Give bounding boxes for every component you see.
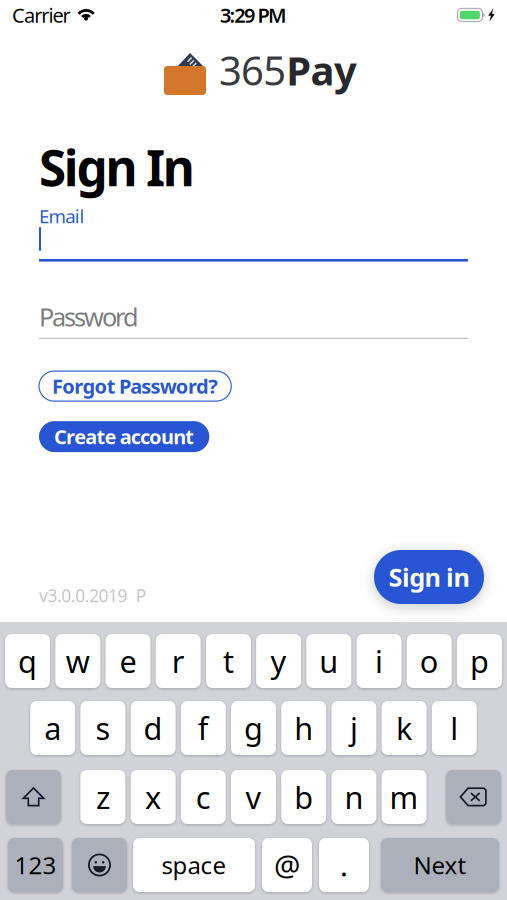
- staticText: r: [172, 641, 185, 681]
- staticText: l: [450, 708, 458, 748]
- staticText: d: [144, 708, 163, 748]
- staticText: Create account: [54, 423, 194, 450]
- button[interactable]: n: [331, 770, 376, 824]
- staticText: i: [375, 641, 383, 681]
- staticText: Carrier: [12, 2, 71, 28]
- button[interactable]: g: [231, 701, 276, 755]
- button[interactable]: j: [331, 701, 376, 755]
- button[interactable]: .: [319, 838, 369, 892]
- button[interactable]: r: [156, 634, 201, 688]
- staticText: m: [390, 777, 419, 817]
- button[interactable]: y: [256, 634, 301, 688]
- staticText: space: [161, 849, 226, 881]
- button[interactable]: s: [80, 701, 125, 755]
- button[interactable]: @: [262, 838, 312, 892]
- button[interactable]: 123: [8, 838, 63, 892]
- button[interactable]: x: [131, 770, 176, 824]
- button[interactable]: space: [133, 838, 255, 892]
- staticText: g: [244, 708, 263, 748]
- button[interactable]: v: [231, 770, 276, 824]
- staticText: @: [274, 845, 300, 884]
- staticText: u: [319, 641, 338, 681]
- button[interactable]: Next: [381, 838, 499, 892]
- staticText: f: [198, 708, 209, 748]
- button[interactable]: w: [55, 634, 100, 688]
- staticText: 123: [14, 849, 56, 881]
- staticText: Next: [413, 849, 466, 881]
- staticText: c: [196, 777, 211, 817]
- staticText: Forgot Password?: [52, 373, 218, 399]
- staticText: k: [396, 708, 412, 748]
- staticText: o: [420, 641, 439, 681]
- button[interactable]: Delete: [446, 770, 501, 824]
- button[interactable]: o: [407, 634, 452, 688]
- button[interactable]: d: [131, 701, 176, 755]
- button[interactable]: e: [105, 634, 150, 688]
- button[interactable]: a: [30, 701, 75, 755]
- staticText: Sign in: [389, 560, 469, 594]
- staticText: h: [294, 708, 313, 748]
- button[interactable]: Sign in: [374, 550, 484, 604]
- staticText: n: [344, 777, 363, 817]
- staticText: z: [96, 777, 110, 817]
- staticText: p: [470, 641, 489, 681]
- staticText: a: [44, 708, 61, 748]
- staticText: .: [340, 845, 348, 884]
- staticText: 3:29 PM: [220, 2, 287, 28]
- staticText: v: [245, 777, 261, 817]
- staticText: q: [18, 641, 37, 681]
- staticText: Sign In: [39, 134, 195, 200]
- staticText: Password: [39, 300, 139, 333]
- staticText: j: [350, 708, 358, 748]
- button[interactable]: b: [281, 770, 326, 824]
- button[interactable]: u: [306, 634, 351, 688]
- button[interactable]: k: [382, 701, 427, 755]
- button[interactable]: f: [181, 701, 226, 755]
- staticText: b: [294, 777, 313, 817]
- button[interactable]: Shift: [6, 770, 61, 824]
- button[interactable]: q: [5, 634, 50, 688]
- button[interactable]: c: [181, 770, 226, 824]
- button[interactable]: l: [432, 701, 477, 755]
- staticText: w: [66, 641, 90, 681]
- staticText: x: [145, 777, 161, 817]
- staticText: Pay: [286, 43, 357, 96]
- staticText: s: [95, 708, 110, 748]
- button[interactable]: p: [457, 634, 502, 688]
- button[interactable]: m: [382, 770, 427, 824]
- button[interactable]: t: [206, 634, 251, 688]
- button[interactable]: h: [281, 701, 326, 755]
- button[interactable]: Create account: [39, 421, 209, 452]
- staticText: e: [119, 641, 136, 681]
- button[interactable]: Emoji: [72, 838, 127, 892]
- staticText: y: [271, 641, 287, 681]
- staticText: v3.0.0.2019 P: [39, 584, 146, 607]
- staticText: Email: [39, 204, 84, 228]
- button[interactable]: i: [356, 634, 401, 688]
- button[interactable]: Forgot Password?: [39, 371, 231, 401]
- button[interactable]: z: [80, 770, 125, 824]
- staticText: 365: [219, 43, 286, 96]
- staticText: t: [223, 641, 234, 681]
